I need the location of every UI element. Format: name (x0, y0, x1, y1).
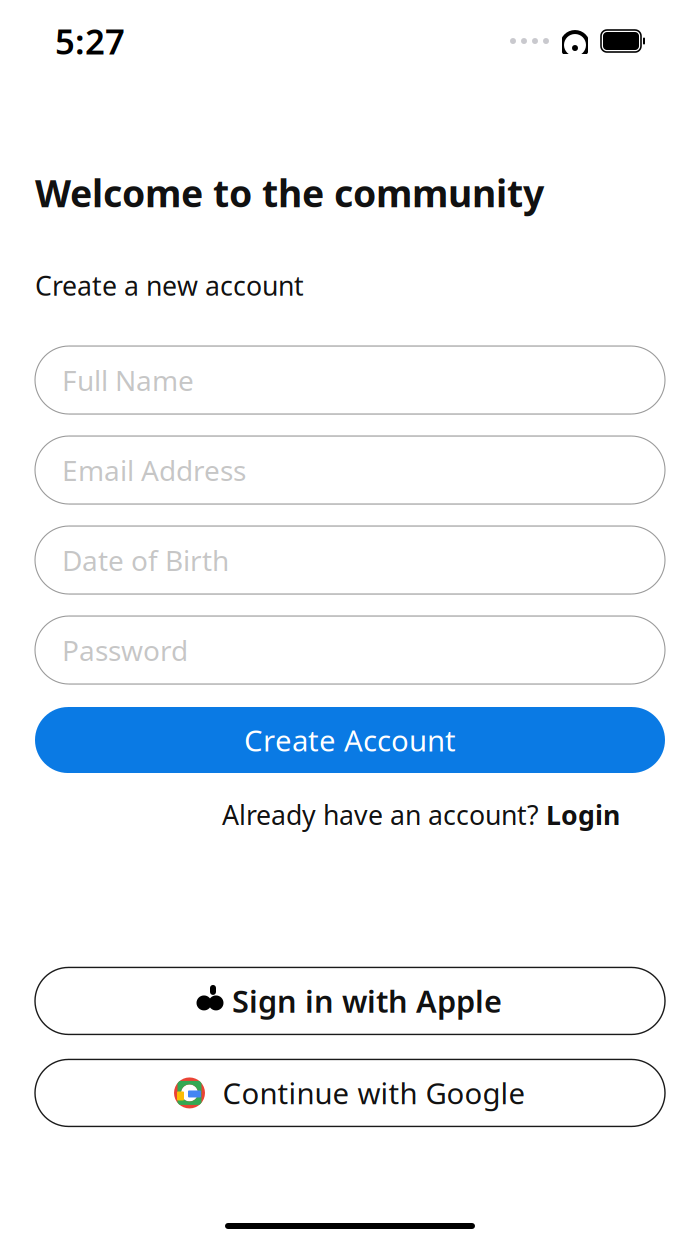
staticText: Full Name (62, 361, 194, 399)
button[interactable]: Create Account (35, 707, 665, 773)
staticText: Create Account (244, 720, 456, 759)
staticText: Already have an account? (222, 797, 546, 832)
staticText: Welcome to the community (35, 168, 544, 218)
button[interactable]: Sign in with Apple (35, 967, 665, 1034)
staticText: Login (546, 797, 620, 832)
staticText: Continue with Google (222, 1073, 525, 1112)
staticText: Sign in with Apple (232, 981, 502, 1021)
staticText: Email Address (62, 451, 246, 489)
staticText: Password (62, 631, 188, 669)
button[interactable]: Already have an account? (0, 797, 620, 832)
staticText: Create a new account (35, 268, 304, 303)
staticText: Date of Birth (62, 541, 229, 579)
button[interactable]: Continue with Google (35, 1059, 665, 1126)
staticText: 5:27 (55, 18, 125, 64)
